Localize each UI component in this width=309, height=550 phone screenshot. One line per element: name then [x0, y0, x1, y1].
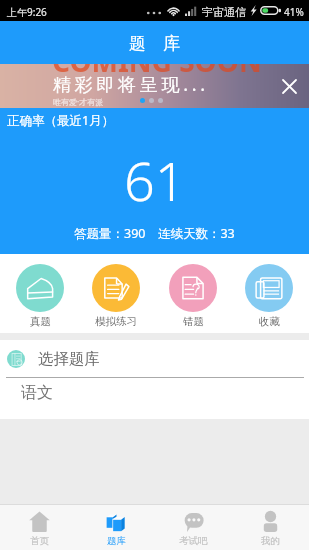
staticText: 模拟练习 [95, 315, 137, 328]
button[interactable]: 我的 [232, 505, 309, 550]
staticText: 首页 [30, 535, 49, 547]
button[interactable]: 考试吧 [155, 505, 232, 550]
button[interactable]: 首页 [0, 505, 78, 550]
button[interactable]: 错题 [157, 254, 229, 328]
staticText: COMING SOON [52, 64, 262, 80]
staticText: 真题 [30, 315, 51, 328]
staticText: 我的 [261, 535, 280, 547]
button[interactable]: 模拟练习 [80, 254, 152, 328]
staticText: 上午9:26 [7, 5, 47, 19]
button[interactable]: 语文 [0, 378, 309, 407]
staticText: 宇宙通信 [202, 5, 246, 19]
button[interactable]: 选择题库 [0, 340, 309, 377]
staticText: 题库 [107, 535, 126, 547]
button[interactable]: Close banner [269, 66, 309, 106]
staticText: 答题量：390 连续天数：33 [74, 225, 235, 242]
button[interactable]: 题库 [78, 505, 155, 550]
staticText: 唯有爱·才有派 [53, 96, 104, 107]
staticText: 错题 [183, 315, 204, 328]
staticText: 收藏 [259, 315, 280, 328]
staticText: 精彩即将呈现... [53, 72, 209, 97]
staticText: 41% [284, 5, 304, 19]
button[interactable]: 收藏 [233, 254, 305, 328]
staticText: 题 库 [129, 31, 180, 54]
staticText: 语文 [21, 383, 53, 403]
staticText: 正确率（最近1月） [7, 112, 115, 129]
staticText: 考试吧 [179, 535, 208, 547]
staticText: 选择题库 [38, 349, 100, 369]
button[interactable]: COMING SOON [0, 64, 309, 108]
staticText: 61 [124, 143, 186, 217]
button[interactable]: 真题 [4, 254, 76, 328]
